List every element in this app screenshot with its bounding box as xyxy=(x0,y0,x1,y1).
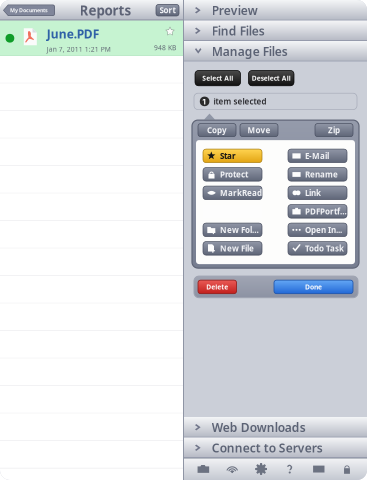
button[interactable]: Camera xyxy=(194,459,213,478)
staticText: Done xyxy=(305,282,322,291)
button[interactable]: Delete xyxy=(198,280,236,294)
staticText: Rename xyxy=(305,169,338,180)
staticText: Move xyxy=(247,125,270,135)
staticText: PDFPortfolio xyxy=(305,206,347,217)
staticText: Star xyxy=(220,150,236,161)
staticText: 948 KB xyxy=(154,43,176,52)
button[interactable]: Settings xyxy=(252,459,271,478)
button[interactable]: Preview xyxy=(184,0,367,20)
button[interactable]: New Folder xyxy=(203,223,262,237)
button[interactable]: Link xyxy=(288,186,347,200)
staticText: New Folder xyxy=(220,224,262,235)
button[interactable]: My Documents xyxy=(0,4,55,16)
button[interactable]: Rename xyxy=(288,168,347,181)
staticText: item selected xyxy=(213,96,266,107)
button[interactable]: Display xyxy=(309,459,328,478)
button[interactable]: June.PDF xyxy=(0,20,183,56)
button[interactable]: Protect xyxy=(203,168,262,181)
staticText: New File xyxy=(220,243,254,254)
button[interactable]: Connect to Servers xyxy=(184,437,367,458)
button[interactable]: Web Downloads xyxy=(184,417,367,437)
staticText: Link xyxy=(305,187,321,198)
staticText: Jan 7, 2011 1:21 PM xyxy=(47,45,111,54)
button[interactable]: Wi-Fi xyxy=(223,459,242,478)
staticText: Todo Task xyxy=(305,243,344,254)
button[interactable]: New File xyxy=(203,242,262,255)
button[interactable]: Select All xyxy=(195,70,240,86)
button[interactable]: Zip xyxy=(315,124,353,137)
button[interactable]: Deselect All xyxy=(248,70,294,86)
staticText: Connect to Servers xyxy=(212,440,323,456)
staticText: Delete xyxy=(206,282,228,291)
staticText: E-Mail xyxy=(305,150,329,161)
staticText: 1 xyxy=(202,96,207,107)
button[interactable]: Find Files xyxy=(184,20,367,41)
staticText: Zip xyxy=(328,125,340,135)
staticText: Find Files xyxy=(212,23,265,39)
button[interactable]: Done xyxy=(274,280,353,294)
staticText: MarkRead xyxy=(220,187,262,198)
staticText: Manage Files xyxy=(212,43,288,59)
button[interactable]: Move xyxy=(240,124,278,137)
button[interactable]: Manage Files xyxy=(184,41,367,61)
staticText: Select All xyxy=(202,74,233,83)
button[interactable]: Help xyxy=(280,459,299,478)
staticText: Preview xyxy=(212,2,258,18)
button[interactable]: PDFPortfolio xyxy=(288,205,347,218)
staticText: Reports xyxy=(79,1,131,19)
staticText: Open In... xyxy=(305,224,342,235)
staticText: My Documents xyxy=(10,7,48,14)
staticText: Web Downloads xyxy=(212,419,306,435)
staticText: Deselect All xyxy=(252,74,291,83)
button[interactable]: E-Mail xyxy=(288,149,347,163)
button[interactable]: Copy xyxy=(198,124,236,137)
staticText: Protect xyxy=(220,169,248,180)
button[interactable]: MarkRead xyxy=(203,186,262,200)
button[interactable]: Sort xyxy=(156,4,179,16)
button[interactable]: Lock xyxy=(338,459,357,478)
button[interactable]: Todo Task xyxy=(288,242,347,255)
button[interactable]: Open In... xyxy=(288,223,347,237)
staticText: Sort xyxy=(159,5,175,15)
staticText: Copy xyxy=(207,125,227,135)
button[interactable]: Star xyxy=(203,149,262,163)
staticText: June.PDF xyxy=(47,26,100,42)
